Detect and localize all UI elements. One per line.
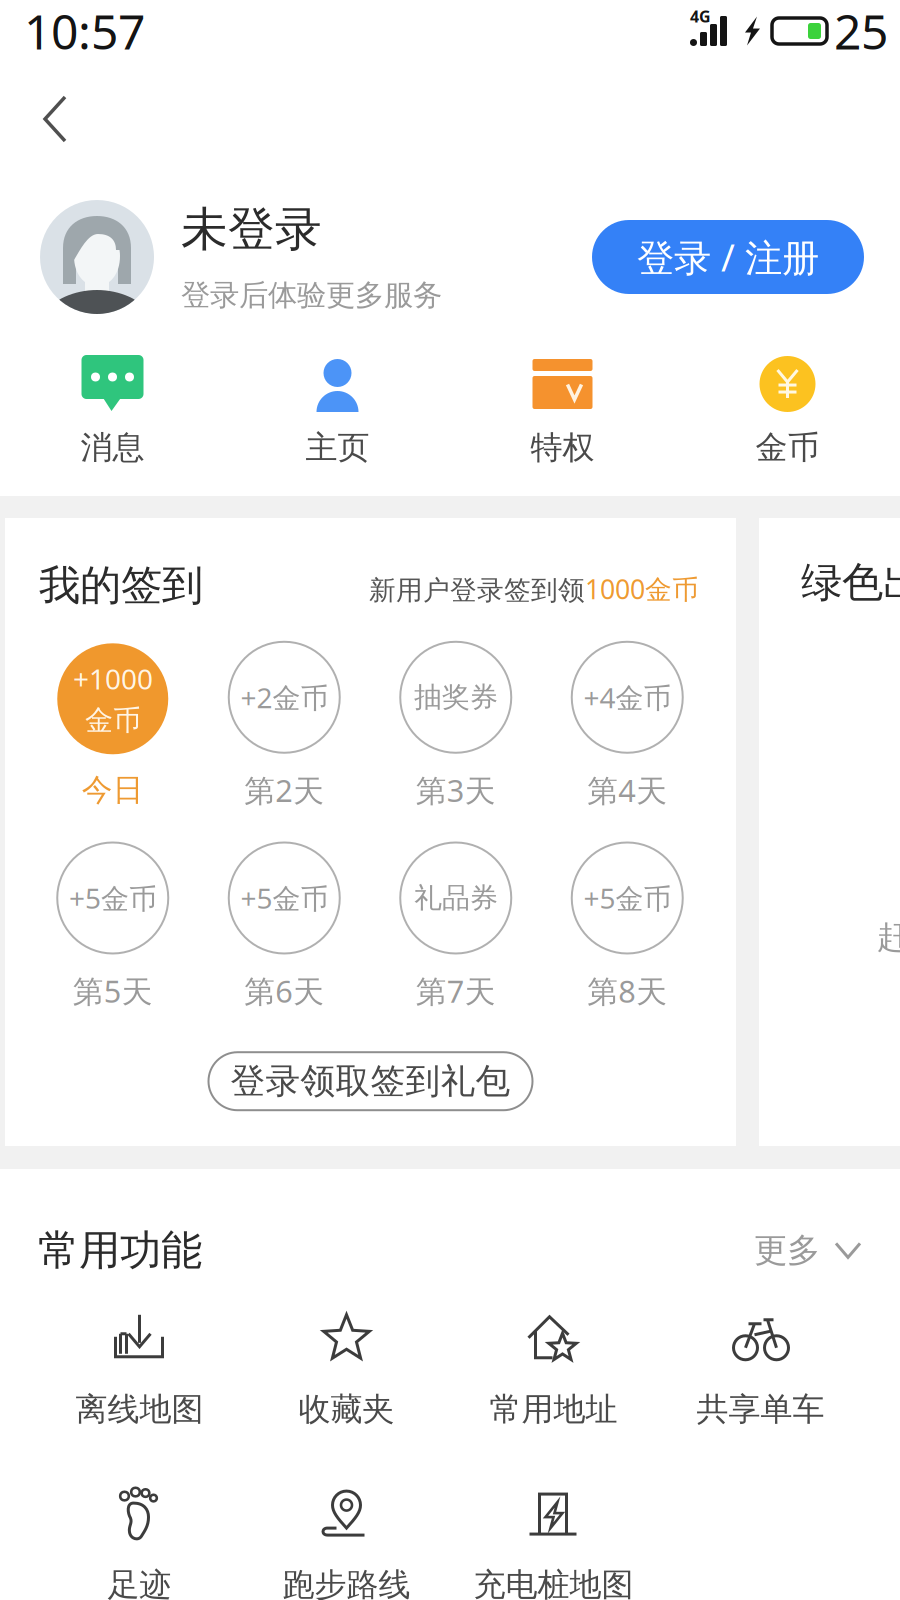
button[interactable]: +1000 金币 <box>57 643 168 809</box>
staticText: 绿色出行 <box>801 557 900 608</box>
staticText: +5金币 <box>69 879 157 917</box>
staticText: 第3天 <box>416 770 496 810</box>
button[interactable]: +5金币 <box>229 842 340 1011</box>
button[interactable]: 主页 <box>225 355 450 467</box>
staticText: 赶快出发吧 <box>877 918 900 957</box>
staticText: 主页 <box>305 428 369 467</box>
staticText: 礼品券 <box>414 881 498 915</box>
staticText: 抽奖券 <box>414 680 498 714</box>
staticText: 第7天 <box>416 970 496 1011</box>
staticText: 常用地址 <box>489 1390 617 1429</box>
button[interactable]: 更多 <box>754 1230 862 1271</box>
staticText: 新用户登录签到领 <box>369 574 585 607</box>
staticText: 第2天 <box>244 770 324 810</box>
staticText: 跑步路线 <box>282 1565 410 1600</box>
button[interactable]: 常用地址 <box>450 1310 657 1429</box>
button[interactable]: +4金币 <box>572 642 683 810</box>
staticText: 25 <box>834 0 888 63</box>
staticText: +1000 金币 <box>73 660 153 738</box>
button[interactable]: 收藏夹 <box>243 1310 450 1429</box>
staticText: 登录 / 注册 <box>637 232 819 282</box>
staticText: 10:57 <box>24 0 145 63</box>
staticText: 4G <box>690 6 711 27</box>
staticText: 第8天 <box>587 970 667 1011</box>
staticText: 常用功能 <box>38 1225 202 1276</box>
staticText: 我的签到 <box>39 560 203 611</box>
staticText: +4金币 <box>583 679 671 716</box>
staticText: 消息 <box>80 428 144 467</box>
staticText: 足迹 <box>107 1565 171 1600</box>
button[interactable]: 足迹 <box>36 1485 243 1600</box>
staticText: 第5天 <box>73 970 153 1011</box>
staticText: 登录后体验更多服务 <box>181 277 442 313</box>
staticText: +2金币 <box>240 679 328 716</box>
button[interactable]: 离线地图 <box>36 1310 243 1429</box>
staticText: 第6天 <box>244 970 324 1011</box>
button[interactable]: 礼品券 <box>400 842 511 1011</box>
button[interactable]: +5金币 <box>572 842 683 1011</box>
staticText: 第4天 <box>587 770 667 810</box>
button[interactable]: 抽奖券 <box>400 642 511 810</box>
button[interactable]: +5金币 <box>57 842 168 1011</box>
staticText: 更多 <box>754 1230 820 1271</box>
button[interactable]: 登录 / 注册 <box>592 220 864 294</box>
staticText: 未登录 <box>181 201 322 258</box>
button[interactable]: 消息 <box>0 355 225 467</box>
staticText: 1000金币 <box>585 571 699 606</box>
button[interactable]: Avatar <box>40 200 154 314</box>
button[interactable]: Back <box>16 62 88 176</box>
button[interactable]: 金币 <box>675 355 900 467</box>
button[interactable]: 跑步路线 <box>243 1485 450 1600</box>
button[interactable]: 共享单车 <box>657 1310 864 1429</box>
button[interactable]: 登录领取签到礼包 <box>208 1052 532 1110</box>
staticText: 登录领取签到礼包 <box>230 1060 510 1102</box>
staticText: 今日 <box>82 771 144 809</box>
button[interactable]: 充电桩地图 <box>450 1485 657 1600</box>
staticText: 离线地图 <box>75 1390 203 1429</box>
staticText: 特权 <box>530 428 594 467</box>
staticText: +5金币 <box>240 879 328 917</box>
staticText: 共享单车 <box>696 1390 824 1429</box>
staticText: 金币 <box>755 428 819 467</box>
staticText: 充电桩地图 <box>473 1565 633 1600</box>
staticText: +5金币 <box>583 879 671 917</box>
button[interactable]: +2金币 <box>229 642 340 810</box>
staticText: 收藏夹 <box>298 1390 394 1429</box>
button[interactable]: 特权 <box>450 355 675 467</box>
